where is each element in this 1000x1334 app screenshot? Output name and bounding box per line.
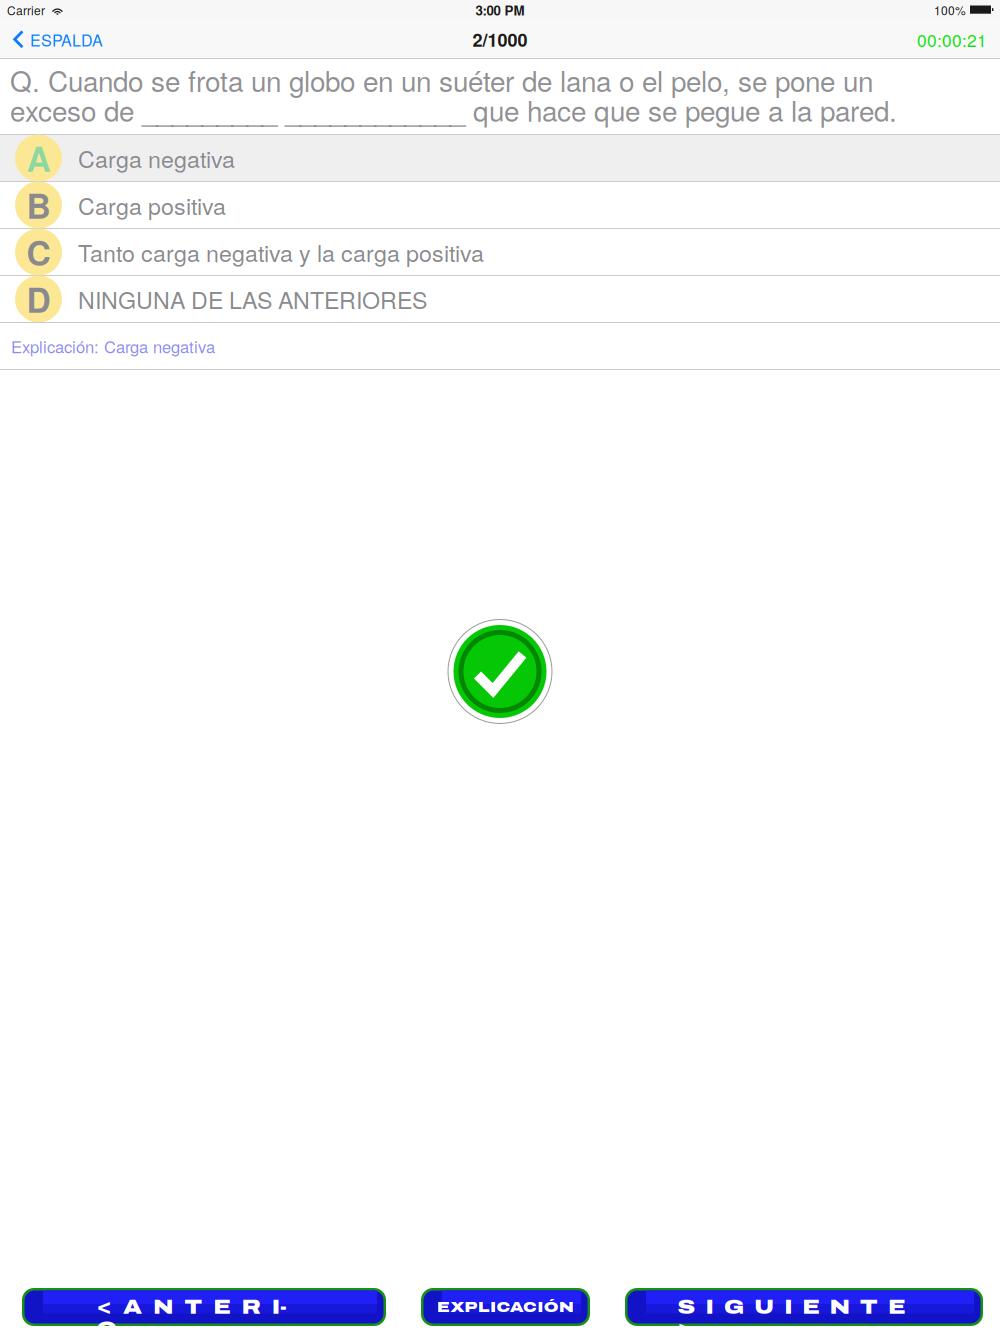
- staticText: ESPALDA: [30, 28, 103, 51]
- button[interactable]: Anterior: [22, 1288, 386, 1326]
- staticText: C: [26, 228, 50, 276]
- staticText: B: [26, 181, 50, 229]
- button[interactable]: Explicación: [421, 1288, 590, 1326]
- staticText: Explicación: Carga negativa: [11, 334, 215, 358]
- staticText: 00:00:21: [917, 27, 987, 52]
- button[interactable]: Siguiente: [625, 1288, 983, 1326]
- staticText: Tanto carga negativa y la carga positiva: [78, 235, 484, 269]
- button[interactable]: Explicación: Carga negativa: [0, 323, 1000, 369]
- staticText: 100%: [934, 1, 966, 19]
- staticText: Carrier: [7, 1, 45, 19]
- staticText: <ANTERIO: [97, 1296, 311, 1318]
- staticText: Q. Cuando se frota un globo en un suéter…: [10, 65, 897, 124]
- button[interactable]: A: [0, 135, 1000, 181]
- staticText: A: [26, 134, 50, 182]
- staticText: EXPLICACIÓN: [437, 1299, 574, 1315]
- button[interactable]: ESPALDA: [0, 20, 115, 59]
- staticText: NINGUNA DE LAS ANTERIORES: [78, 282, 427, 316]
- button[interactable]: D: [0, 276, 1000, 322]
- staticText: 3:00 PM: [475, 0, 524, 20]
- button[interactable]: C: [0, 229, 1000, 275]
- staticText: D: [26, 275, 50, 323]
- button[interactable]: B: [0, 182, 1000, 228]
- staticText: Carga positiva: [78, 188, 226, 222]
- staticText: Carga negativa: [78, 141, 235, 175]
- staticText: SIGUIENTE>: [678, 1296, 930, 1318]
- staticText: 2/1000: [472, 27, 527, 52]
